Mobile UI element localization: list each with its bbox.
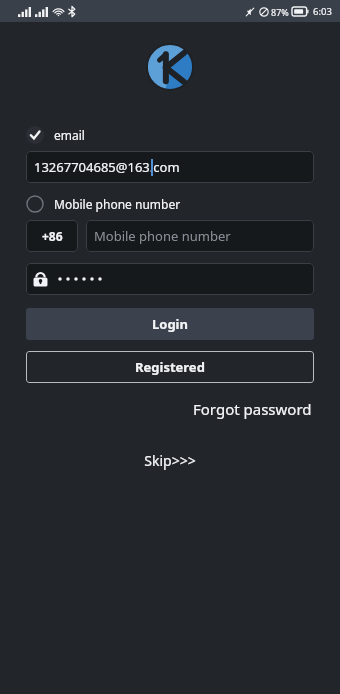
button[interactable]: Mobile phone number [86, 220, 314, 252]
button[interactable]: Forgot password [191, 395, 314, 423]
staticText: email [54, 127, 85, 143]
staticText: Forgot password [193, 399, 312, 419]
button[interactable]: Registered [26, 351, 314, 383]
button[interactable]: 13267704685@163.com [26, 151, 314, 183]
button[interactable]: Mobile phone number [26, 193, 181, 215]
staticText: +86 [42, 228, 63, 244]
staticText: Mobile phone number [54, 196, 181, 212]
button[interactable] [26, 263, 314, 295]
button[interactable]: +86 [26, 220, 78, 252]
staticText: Mobile phone number [94, 227, 231, 245]
staticText: Login [152, 315, 188, 333]
staticText: 6:03 [313, 5, 332, 18]
button[interactable]: Login [26, 308, 314, 340]
button[interactable]: Skip>>> [136, 447, 204, 474]
staticText: 13267704685@163.com [34, 158, 180, 176]
button[interactable]: email [26, 124, 85, 146]
other: App logo [147, 44, 193, 90]
staticText: Skip>>> [144, 451, 196, 470]
staticText: Registered [135, 358, 205, 376]
staticText: 87% [271, 6, 289, 18]
